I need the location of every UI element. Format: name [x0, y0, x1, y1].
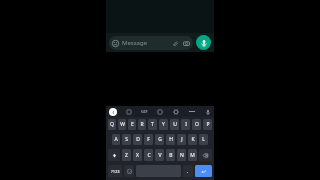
button[interactable]: Camera [183, 40, 190, 47]
button[interactable]: Keyboard tool [157, 109, 163, 115]
button[interactable]: D [133, 134, 142, 145]
button[interactable]: Keyboard tool [126, 109, 132, 115]
button[interactable]: Google [109, 108, 117, 116]
button[interactable]: Q [108, 119, 116, 130]
button[interactable]: G [155, 134, 164, 145]
staticText: A [114, 136, 118, 143]
staticText: G [158, 136, 162, 143]
button[interactable]: B [166, 149, 175, 161]
staticText: T [151, 121, 154, 128]
staticText: U [173, 121, 177, 128]
staticText: C [147, 152, 151, 159]
staticText: M [190, 152, 195, 159]
button[interactable]: Keyboard tool [173, 109, 179, 115]
button[interactable]: O [192, 119, 201, 130]
button[interactable]: X [133, 149, 142, 161]
button[interactable]: N [177, 149, 186, 161]
button[interactable]: Key [108, 149, 120, 161]
button[interactable]: Z [122, 149, 131, 161]
staticText: Message [122, 39, 148, 47]
staticText: B [169, 152, 173, 159]
button[interactable]: T [148, 119, 157, 130]
button[interactable]: Attach [172, 40, 179, 47]
staticText: GIF [141, 109, 148, 114]
staticText: O [195, 121, 199, 128]
staticText: F [147, 136, 150, 143]
button[interactable]: F [144, 134, 153, 145]
button[interactable]: S [122, 134, 131, 145]
button[interactable]: Key [199, 149, 212, 161]
other: Emoji [112, 40, 119, 47]
button[interactable]: Voice message [196, 35, 211, 50]
button[interactable]: M [188, 149, 197, 161]
button[interactable]: W [118, 119, 126, 130]
button[interactable]: Keyboard tool [205, 109, 211, 115]
staticText: ?123 [111, 169, 120, 174]
button[interactable]: P [203, 119, 212, 130]
staticText: W [120, 121, 125, 128]
button[interactable]: I [181, 119, 190, 130]
button[interactable]: C [144, 149, 153, 161]
staticText: R [140, 121, 144, 128]
staticText: P [206, 121, 210, 128]
button[interactable]: R [138, 119, 146, 130]
staticText: Z [125, 152, 128, 159]
staticText: N [180, 152, 184, 159]
staticText: D [136, 136, 140, 143]
button[interactable]: . [183, 165, 193, 177]
staticText: H [169, 136, 173, 143]
button[interactable]: Y [159, 119, 168, 130]
staticText: . [187, 168, 189, 175]
button[interactable]: L [199, 134, 208, 145]
staticText: S [125, 136, 128, 143]
staticText: V [158, 152, 162, 159]
staticText: X [136, 152, 139, 159]
button[interactable]: V [155, 149, 164, 161]
staticText: K [191, 136, 195, 143]
button[interactable]: ?123 [108, 165, 122, 177]
button[interactable]: Emoji [109, 36, 193, 50]
staticText: Q [110, 121, 114, 128]
button[interactable]: Enter [195, 165, 212, 177]
staticText: E [131, 121, 134, 128]
staticText: Y [162, 121, 165, 128]
button[interactable]: K [188, 134, 197, 145]
staticText: J [181, 136, 183, 143]
button[interactable]: A [112, 134, 120, 145]
button[interactable]: U [170, 119, 179, 130]
staticText: I [185, 121, 187, 128]
button[interactable]: Emoji [124, 165, 134, 177]
staticText: L [202, 136, 205, 143]
button[interactable]: J [177, 134, 186, 145]
button[interactable]: E [128, 119, 136, 130]
button[interactable]: H [166, 134, 175, 145]
